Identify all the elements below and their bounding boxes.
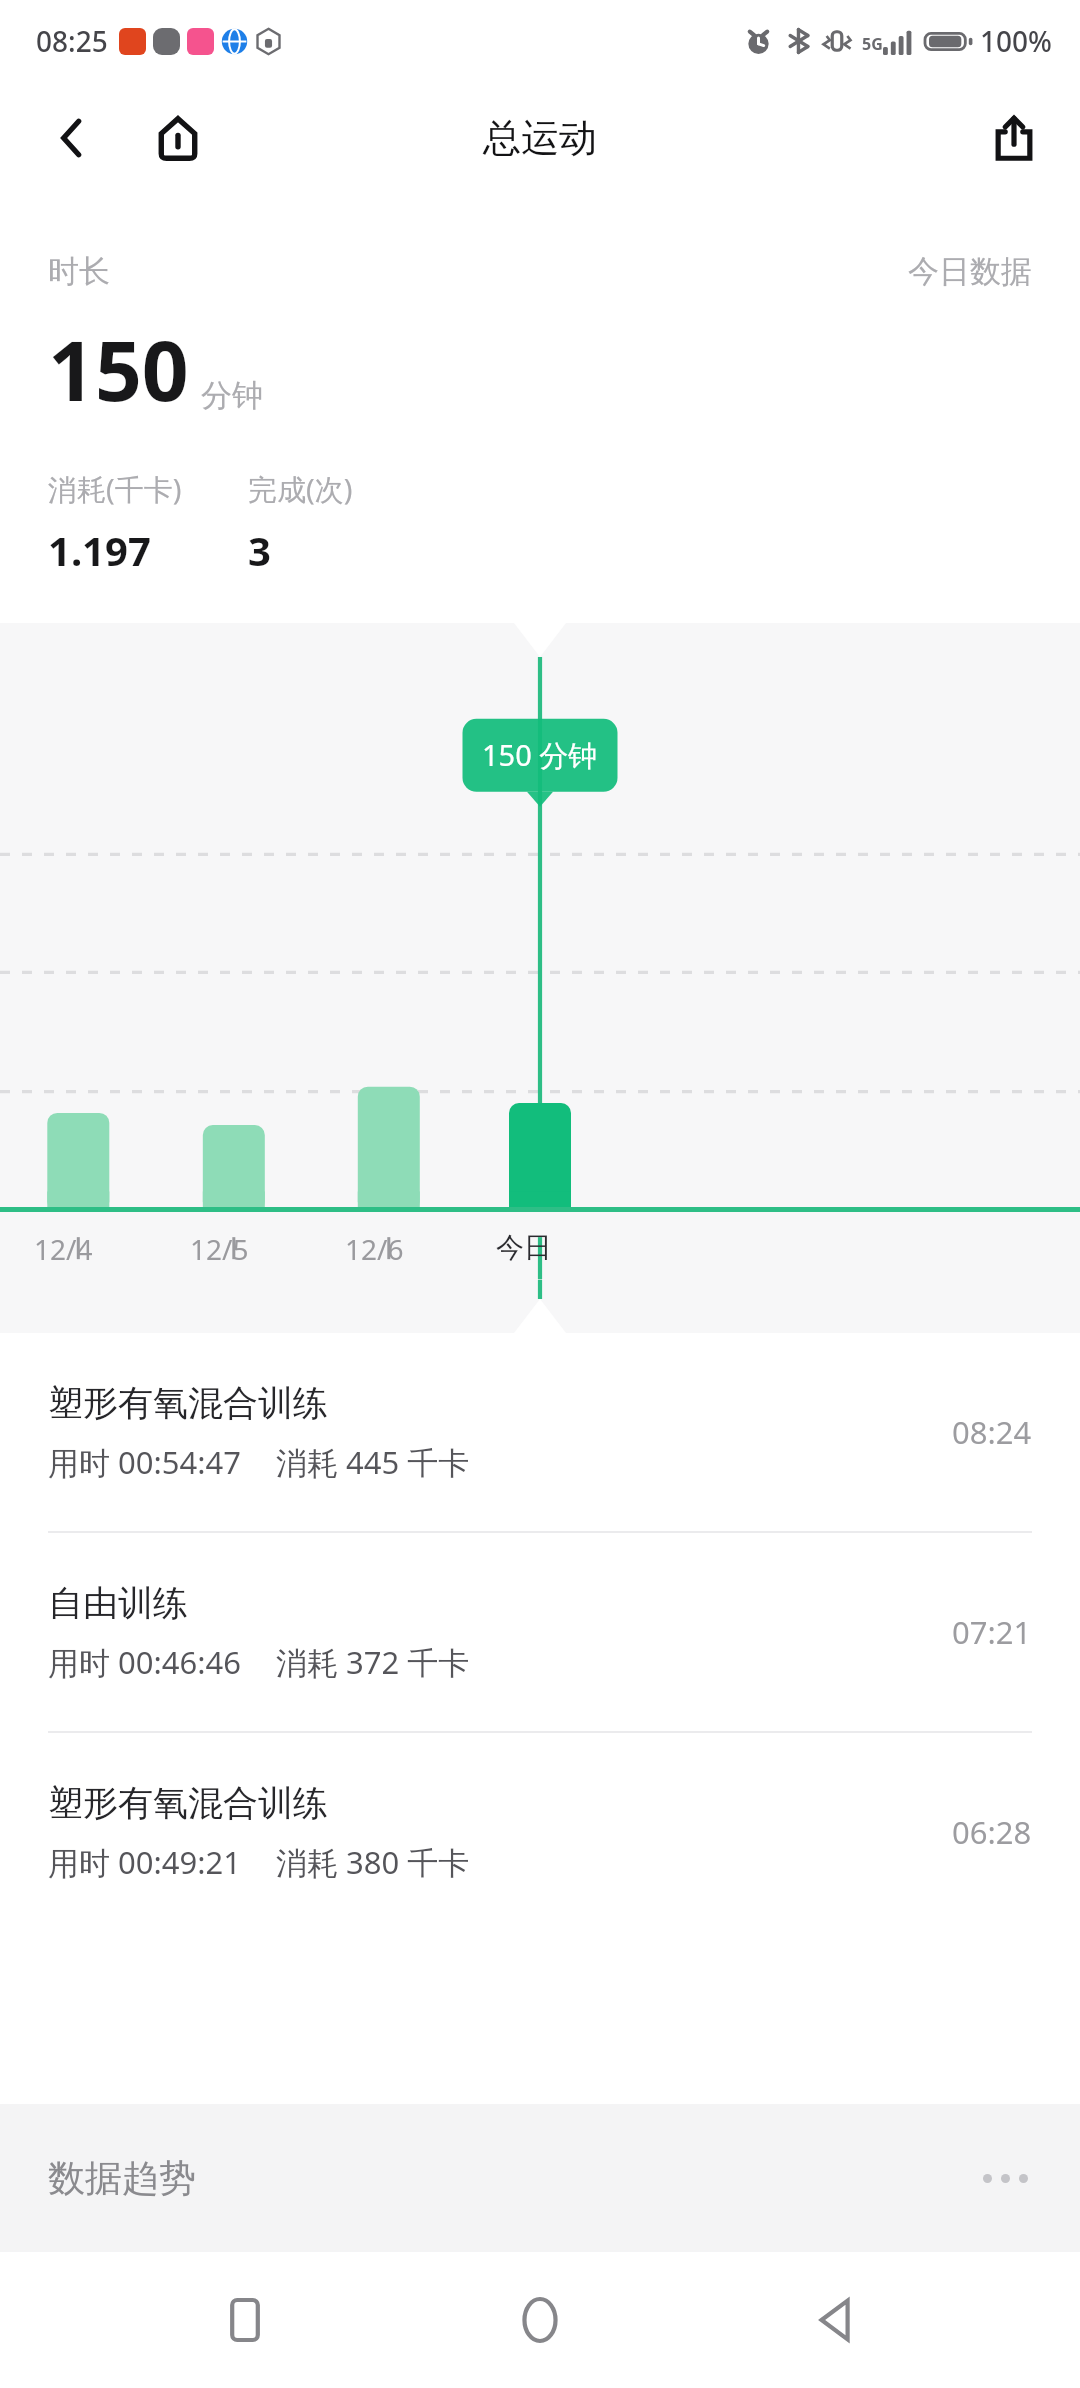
staticText: 100% xyxy=(980,22,1052,60)
button[interactable]: Back xyxy=(28,94,116,182)
staticText: 06:28 xyxy=(952,1811,1032,1853)
staticText: 用时 00:49:21 xyxy=(48,1841,242,1883)
staticText: 用时 00:46:46 xyxy=(48,1641,242,1683)
staticText: 消耗(千卡) xyxy=(48,469,182,509)
button[interactable]: Back xyxy=(785,2270,885,2370)
staticText: 12/6 xyxy=(345,1230,404,1268)
staticText: 自由训练 xyxy=(48,1581,188,1625)
staticText: 消耗 380 千卡 xyxy=(276,1841,470,1883)
staticText: 消耗 372 千卡 xyxy=(276,1641,470,1683)
button[interactable]: 今日数据 xyxy=(908,252,1032,291)
staticText: 塑形有氧混合训练 xyxy=(48,1381,328,1425)
staticText: 消耗 445 千卡 xyxy=(276,1441,470,1483)
staticText: 1.197 xyxy=(48,523,151,577)
staticText: 塑形有氧混合训练 xyxy=(48,1781,328,1825)
staticText: 总运动 xyxy=(483,114,597,162)
staticText: 08:25 xyxy=(36,22,108,60)
staticText: 07:21 xyxy=(952,1611,1032,1653)
staticText: 150 xyxy=(48,313,189,425)
button[interactable]: 自由训练 xyxy=(0,1533,1080,1731)
staticText: 3 xyxy=(248,523,271,577)
button[interactable]: Home xyxy=(134,94,222,182)
button[interactable]: Recent apps xyxy=(195,2270,295,2370)
button[interactable]: Home xyxy=(490,2270,590,2370)
staticText: 完成(次) xyxy=(248,469,353,509)
staticText: 数据趋势 xyxy=(48,2155,196,2202)
staticText: 150 分钟 xyxy=(482,735,598,775)
staticText: 12/4 xyxy=(34,1230,93,1268)
button[interactable]: 数据趋势 xyxy=(0,2104,1080,2252)
button[interactable]: Share xyxy=(970,94,1058,182)
staticText: 12/5 xyxy=(190,1230,249,1268)
button[interactable]: 塑形有氧混合训练 xyxy=(0,1333,1080,1531)
button[interactable]: 塑形有氧混合训练 xyxy=(0,1733,1080,1931)
staticText: 今日 xyxy=(496,1230,552,1265)
staticText: 08:24 xyxy=(952,1411,1032,1453)
staticText: 分钟 xyxy=(201,376,263,415)
staticText: 5G xyxy=(862,33,883,55)
staticText: 时长 xyxy=(48,252,110,291)
staticText: 用时 00:54:47 xyxy=(48,1441,242,1483)
